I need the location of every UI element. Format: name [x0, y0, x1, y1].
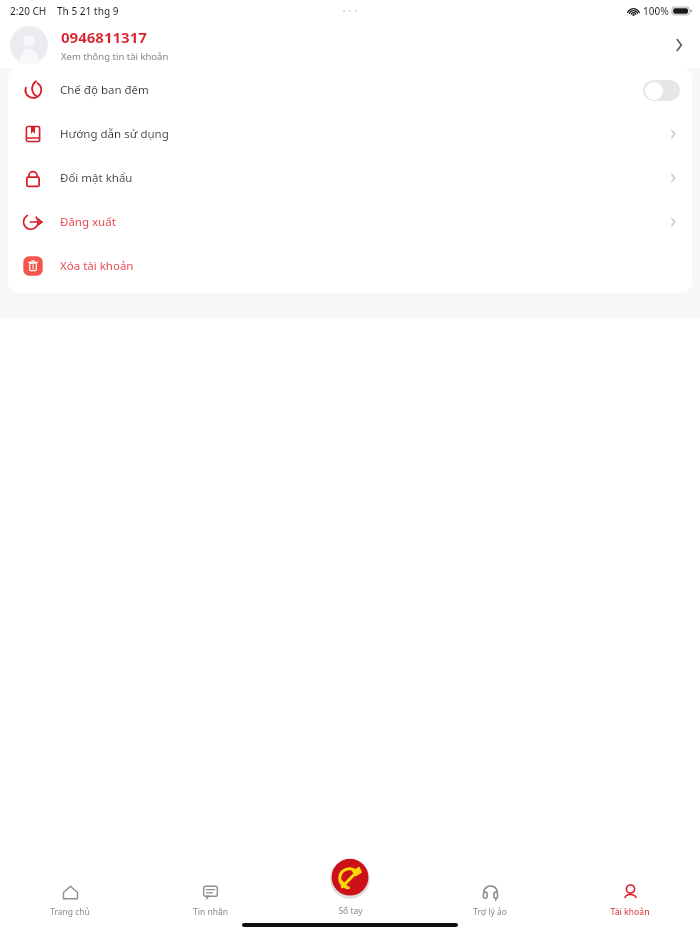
button[interactable]: Chế độ ban đêm	[8, 68, 692, 112]
staticText: Hướng dẫn sử dụng	[60, 126, 169, 142]
button[interactable]: Hướng dẫn sử dụng	[8, 112, 692, 156]
staticText: Trợ lý ảo	[473, 906, 507, 918]
staticText: Chế độ ban đêm	[60, 82, 149, 98]
staticText: Trang chủ	[50, 906, 90, 918]
button[interactable]: Tài khoản	[560, 872, 700, 928]
staticText: Tin nhắn	[193, 906, 228, 918]
staticText: Sổ tay	[338, 905, 363, 917]
staticText: 2:20 CH	[10, 4, 47, 18]
staticText: Xóa tài khoản	[60, 258, 134, 274]
button[interactable]: Chế độ ban đêm	[643, 80, 680, 101]
button[interactable]: 0946811317	[0, 22, 700, 68]
staticText: Đổi mật khẩu	[60, 170, 133, 186]
staticText: Tài khoản	[610, 906, 650, 918]
button[interactable]: Đổi mật khẩu	[8, 156, 692, 200]
button[interactable]: Trang chủ	[0, 872, 140, 928]
staticText: 0946811317	[61, 27, 147, 47]
button[interactable]: Trợ lý ảo	[420, 872, 560, 928]
staticText: Xem thông tin tài khoản	[61, 50, 169, 63]
button[interactable]: Sổ tay	[327, 856, 373, 917]
button[interactable]: Tin nhắn	[140, 872, 280, 928]
staticText: Đăng xuất	[60, 214, 116, 230]
button[interactable]: Xóa tài khoản	[8, 244, 692, 288]
staticText: Th 5 21 thg 9	[57, 4, 119, 18]
button[interactable]: Đăng xuất	[8, 200, 692, 244]
other: Xem thông tin tài khoản	[670, 36, 688, 54]
staticText: 100%	[643, 4, 669, 18]
